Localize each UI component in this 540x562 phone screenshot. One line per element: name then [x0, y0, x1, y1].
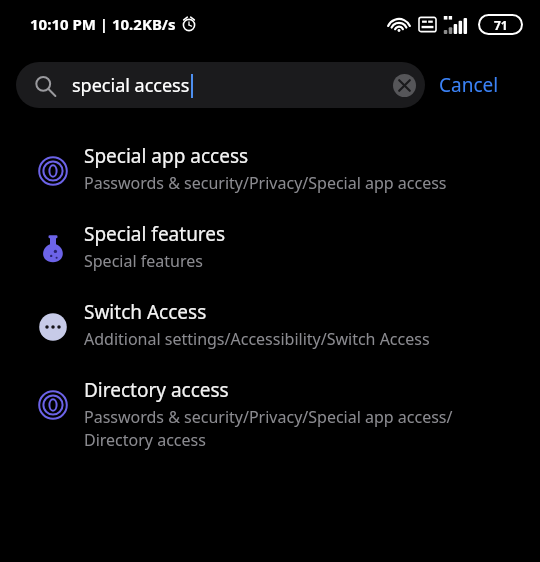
button[interactable]: Switch Access	[0, 288, 540, 366]
staticText: Special app access	[84, 143, 249, 169]
button[interactable]: Cancel	[425, 62, 511, 108]
staticText: Passwords & security/Privacy/Special app…	[84, 406, 518, 451]
button[interactable]: Special app access	[0, 132, 540, 210]
button[interactable]: Clear search	[387, 68, 421, 102]
button[interactable]: special access	[16, 62, 425, 108]
button[interactable]: Special features	[0, 210, 540, 288]
staticText: 10:10 PM | 10.2KB/s	[30, 14, 176, 34]
staticText: special access	[72, 73, 190, 98]
staticText: Directory access	[84, 377, 229, 403]
staticText: 71	[494, 17, 508, 33]
staticText: Switch Access	[84, 299, 207, 325]
staticText: Special features	[84, 221, 226, 247]
staticText: Special features	[84, 250, 203, 272]
button[interactable]: Directory access	[0, 366, 540, 461]
staticText: Cancel	[439, 72, 499, 98]
staticText: Additional settings/Accessibility/Switch…	[84, 328, 430, 350]
staticText: Passwords & security/Privacy/Special app…	[84, 172, 447, 194]
